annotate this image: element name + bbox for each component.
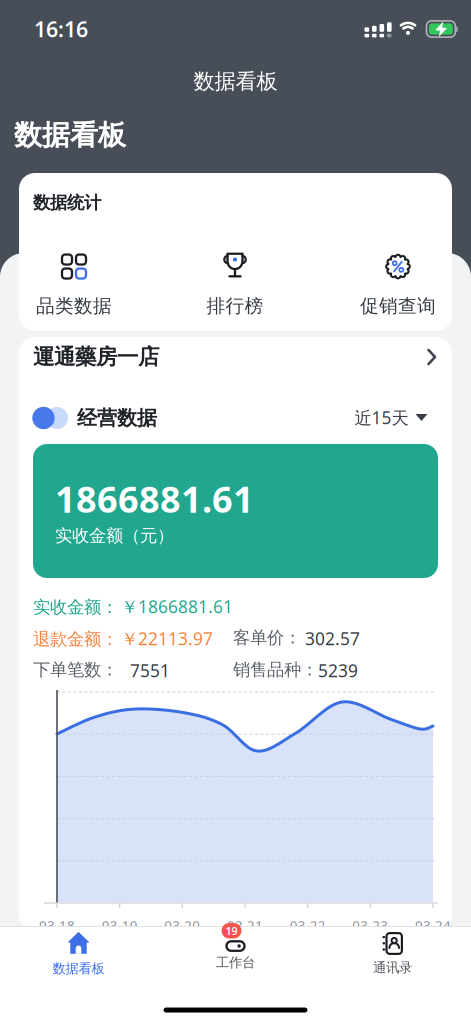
staticText: 实收金额： ￥1866881.61: [33, 595, 233, 618]
staticText: 19: [225, 924, 237, 938]
staticText: 16:16: [34, 15, 88, 43]
staticText: 排行榜: [206, 294, 263, 317]
button[interactable]: 促销查询: [338, 251, 458, 319]
staticText: 03-24: [415, 916, 451, 934]
staticText: 退款金额： ￥22113.97: [33, 627, 213, 650]
staticText: 302.57: [305, 627, 360, 650]
staticText: 03-18: [39, 916, 75, 934]
button[interactable]: 数据看板: [3, 927, 153, 981]
staticText: 数据统计: [33, 192, 101, 213]
staticText: 近15天: [354, 406, 408, 429]
staticText: 数据看板: [193, 68, 277, 95]
staticText: 5239: [318, 659, 358, 682]
staticText: 7551: [130, 659, 170, 682]
button[interactable]: 工作台: [160, 927, 310, 981]
staticText: 销售品种：: [233, 659, 318, 680]
button[interactable]: 運通藥房一店: [19, 336, 452, 378]
staticText: 经营数据: [77, 406, 157, 430]
staticText: 数据看板: [52, 960, 104, 977]
staticText: 1866881.61: [55, 475, 254, 523]
staticText: 下单笔数：: [33, 659, 118, 680]
button[interactable]: 排行榜: [175, 251, 295, 319]
staticText: 客单价：: [233, 627, 301, 648]
staticText: 通讯录: [373, 959, 412, 976]
staticText: 品类数据: [36, 294, 112, 317]
staticText: 03-21: [227, 916, 263, 934]
staticText: 03-19: [102, 916, 138, 934]
staticText: 促销查询: [360, 294, 436, 317]
staticText: 03-23: [352, 916, 388, 934]
staticText: 实收金额（元）: [55, 525, 174, 546]
staticText: 03-22: [290, 916, 326, 934]
staticText: 数据看板: [14, 118, 126, 152]
button[interactable]: 近15天: [345, 402, 437, 432]
button[interactable]: 经营数据: [32, 403, 157, 433]
staticText: 03-20: [164, 916, 200, 934]
staticText: 工作台: [216, 954, 255, 971]
button[interactable]: 通讯录: [317, 927, 467, 981]
staticText: 運通藥房一店: [33, 344, 159, 370]
button[interactable]: 品类数据: [14, 251, 134, 319]
